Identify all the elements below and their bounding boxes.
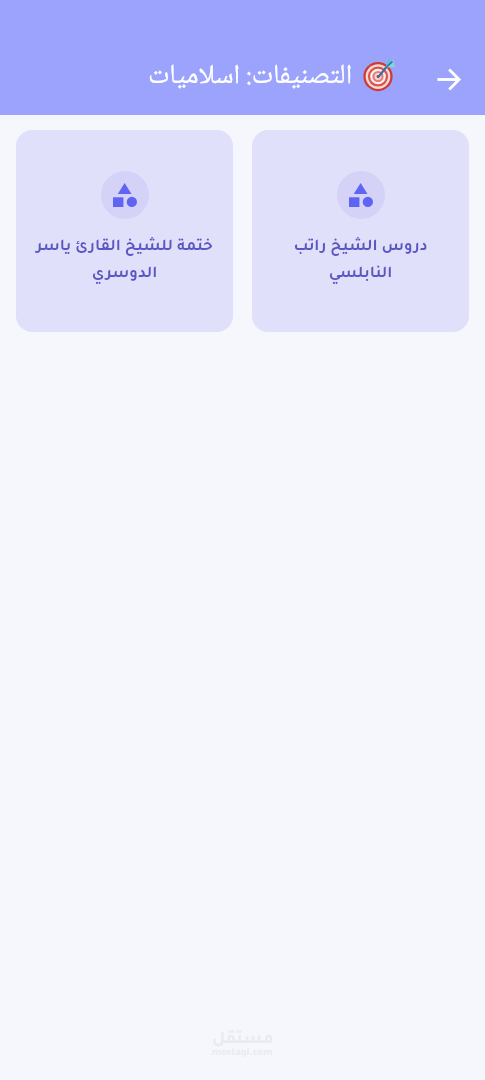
button[interactable]: Back <box>427 58 469 100</box>
staticText: مستقل <box>212 1031 274 1049</box>
button[interactable]: ختمة للشيخ القارئ ياسر الدوسري <box>16 130 233 332</box>
button[interactable]: دروس الشيخ راتب النابلسي <box>252 130 469 332</box>
staticText: التصنيفات: اسلاميات <box>148 58 353 92</box>
staticText: دروس الشيخ راتب النابلسي <box>266 239 455 283</box>
staticText: ختمة للشيخ القارئ ياسر الدوسري <box>30 239 219 283</box>
staticText: mostaql.com <box>212 1048 273 1059</box>
